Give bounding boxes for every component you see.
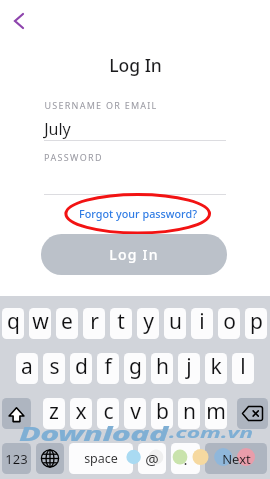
button[interactable]: v bbox=[124, 398, 146, 429]
button[interactable]: Forgot your password? bbox=[73, 203, 203, 224]
button[interactable]: Change keyboard bbox=[36, 443, 64, 474]
button[interactable]: u bbox=[164, 308, 186, 339]
staticText: b bbox=[156, 398, 169, 426]
button[interactable]: Backspace bbox=[237, 398, 268, 429]
staticText: q bbox=[7, 308, 20, 336]
staticText: m bbox=[206, 398, 226, 426]
button[interactable]: d bbox=[70, 353, 92, 384]
staticText: o bbox=[223, 308, 236, 336]
button[interactable]: o bbox=[218, 308, 240, 339]
button[interactable]: Back bbox=[4, 8, 34, 38]
button[interactable]: w bbox=[29, 308, 51, 339]
staticText: Next bbox=[222, 450, 251, 468]
staticText: e bbox=[61, 308, 73, 336]
button[interactable]: q bbox=[2, 308, 24, 339]
staticText: space bbox=[84, 450, 118, 467]
staticText: .com.vn bbox=[169, 422, 253, 442]
staticText: u bbox=[169, 308, 182, 336]
button[interactable]: g bbox=[124, 353, 146, 384]
staticText: a bbox=[21, 353, 33, 381]
button[interactable]: b bbox=[151, 398, 173, 429]
staticText: @ bbox=[145, 449, 159, 469]
button[interactable]: Log In bbox=[41, 234, 227, 275]
button[interactable] bbox=[2, 443, 31, 474]
staticText: j bbox=[186, 353, 192, 381]
staticText: y bbox=[143, 308, 154, 336]
staticText: . bbox=[183, 449, 188, 469]
button[interactable]: y bbox=[137, 308, 159, 339]
staticText: x bbox=[75, 398, 87, 426]
button[interactable]: m bbox=[205, 398, 227, 429]
staticText: z bbox=[49, 398, 59, 426]
staticText: f bbox=[104, 353, 112, 381]
staticText: l bbox=[240, 353, 246, 381]
button[interactable] bbox=[205, 443, 267, 474]
button[interactable] bbox=[171, 443, 200, 474]
button[interactable]: j bbox=[178, 353, 200, 384]
staticText: 123 bbox=[5, 450, 28, 468]
button[interactable]: z bbox=[43, 398, 65, 429]
button[interactable]: l bbox=[232, 353, 254, 384]
staticText: r bbox=[90, 308, 99, 336]
button[interactable]: f bbox=[97, 353, 119, 384]
button[interactable]: s bbox=[43, 353, 65, 384]
staticText: d bbox=[75, 353, 88, 381]
staticText: PASSWORD bbox=[44, 151, 103, 163]
button[interactable] bbox=[69, 443, 133, 474]
staticText: n bbox=[183, 398, 196, 426]
staticText: c bbox=[103, 398, 114, 426]
button[interactable]: Shift bbox=[2, 398, 31, 429]
staticText: v bbox=[130, 398, 141, 426]
button[interactable] bbox=[138, 443, 166, 474]
button[interactable]: n bbox=[178, 398, 200, 429]
staticText: g bbox=[129, 353, 142, 381]
button[interactable]: x bbox=[70, 398, 92, 429]
staticText: Log In bbox=[109, 53, 162, 77]
staticText: k bbox=[210, 353, 222, 381]
staticText: s bbox=[49, 353, 60, 381]
staticText: h bbox=[156, 353, 169, 381]
staticText: USERNAME OR EMAIL bbox=[44, 99, 158, 111]
button[interactable]: r bbox=[83, 308, 105, 339]
button[interactable]: t bbox=[110, 308, 132, 339]
button[interactable]: i bbox=[191, 308, 213, 339]
staticText: Forgot your password? bbox=[79, 206, 197, 221]
button[interactable]: p bbox=[245, 308, 267, 339]
staticText: Log In bbox=[109, 245, 159, 264]
staticText: p bbox=[250, 308, 263, 336]
staticText: i bbox=[199, 308, 205, 336]
staticText: July bbox=[44, 118, 71, 140]
staticText: w bbox=[32, 308, 49, 336]
button[interactable]: c bbox=[97, 398, 119, 429]
button[interactable]: h bbox=[151, 353, 173, 384]
button[interactable]: k bbox=[205, 353, 227, 384]
staticText: Download bbox=[19, 420, 169, 447]
button[interactable]: e bbox=[56, 308, 78, 339]
staticText: t bbox=[117, 308, 125, 336]
button[interactable]: a bbox=[16, 353, 38, 384]
